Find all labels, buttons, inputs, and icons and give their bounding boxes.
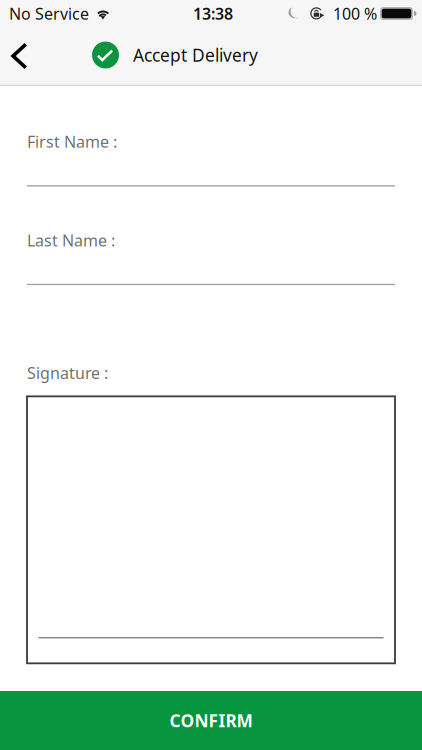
staticText: Accept Delivery bbox=[133, 43, 258, 66]
staticText: Last Name : bbox=[27, 229, 115, 251]
button[interactable]: CONFIRM bbox=[0, 691, 422, 750]
button[interactable]: Back bbox=[0, 31, 54, 86]
button[interactable]: First Name : bbox=[27, 131, 395, 186]
staticText: No Service bbox=[9, 3, 89, 24]
staticText: CONFIRM bbox=[169, 709, 252, 732]
staticText: 100 % bbox=[333, 3, 377, 24]
staticText: 13:38 bbox=[193, 3, 233, 24]
staticText: Signature : bbox=[27, 362, 108, 383]
button[interactable]: Signature area bbox=[27, 396, 395, 663]
button[interactable]: Last Name : bbox=[27, 229, 395, 285]
staticText: First Name : bbox=[27, 131, 117, 152]
